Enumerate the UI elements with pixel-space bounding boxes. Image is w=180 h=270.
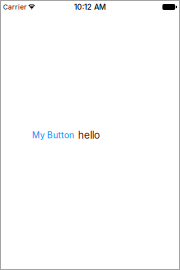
- staticText: My Button: [32, 130, 74, 140]
- staticText: Carrier: [3, 3, 27, 11]
- button[interactable]: My Button: [32, 130, 74, 140]
- staticText: hello: [78, 129, 100, 141]
- staticText: 10:12 AM: [74, 2, 106, 12]
